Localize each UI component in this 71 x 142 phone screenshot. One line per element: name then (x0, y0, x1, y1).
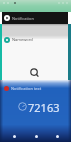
button[interactable]: Back (7, 131, 21, 142)
staticText: Notification (12, 16, 34, 21)
button[interactable]: Notification (2, 12, 68, 24)
button[interactable]: Notification text (0, 84, 71, 93)
staticText: Nameword (12, 37, 33, 42)
button[interactable]: Home (29, 131, 43, 142)
button[interactable]: Search (29, 67, 41, 79)
button[interactable]: Nameword (0, 35, 71, 44)
staticText: Notification text (11, 86, 42, 91)
button[interactable]: Recents (50, 131, 64, 142)
staticText: 72163 (28, 100, 60, 112)
